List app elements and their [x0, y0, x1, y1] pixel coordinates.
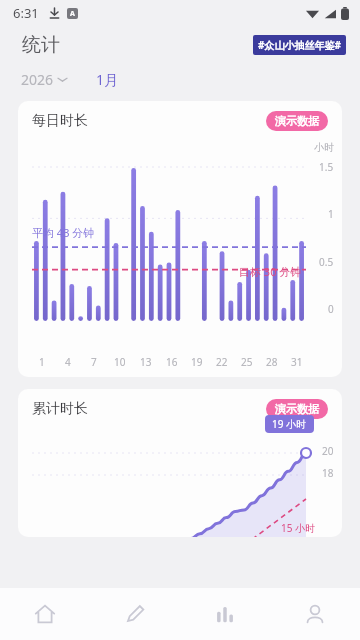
button[interactable]: 演示数据: [266, 399, 328, 419]
button[interactable]: 演示数据: [266, 111, 328, 131]
staticText: 每日时长: [32, 112, 88, 130]
staticText: 4: [65, 355, 71, 369]
button[interactable]: 2026: [18, 67, 70, 92]
staticText: 目标 30 分钟: [239, 264, 302, 279]
staticText: 19 小时: [272, 417, 307, 431]
staticText: 小时: [314, 141, 334, 154]
button[interactable]: Profile: [270, 588, 360, 640]
staticText: 15 小时: [281, 521, 316, 535]
staticText: 6:31: [13, 4, 39, 22]
staticText: 1: [328, 207, 334, 221]
staticText: 10: [114, 355, 126, 369]
staticText: 1.5: [319, 160, 334, 174]
button[interactable]: Edit: [90, 588, 180, 640]
staticText: 0: [328, 302, 334, 316]
staticText: A: [70, 9, 75, 19]
staticText: 13: [140, 355, 152, 369]
staticText: 20: [322, 444, 334, 458]
staticText: 0.5: [319, 255, 334, 269]
staticText: 25: [241, 355, 253, 369]
staticText: 演示数据: [275, 402, 319, 416]
staticText: 18: [322, 466, 334, 480]
button[interactable]: Home: [0, 588, 90, 640]
staticText: 19: [191, 355, 203, 369]
staticText: 28: [266, 355, 278, 369]
staticText: 16: [166, 355, 178, 369]
staticText: 1月: [96, 70, 119, 89]
staticText: 统计: [22, 33, 60, 57]
staticText: 7: [91, 355, 97, 369]
staticText: 平均 43 分钟: [32, 225, 95, 240]
staticText: 1: [39, 355, 45, 369]
staticText: 31: [291, 355, 303, 369]
staticText: #众山小抽丝年鉴#: [258, 38, 341, 52]
staticText: 2026: [21, 70, 54, 89]
button[interactable]: Statistics: [180, 588, 270, 640]
staticText: 22: [216, 355, 228, 369]
staticText: 演示数据: [275, 114, 319, 128]
button[interactable]: #众山小抽丝年鉴#: [253, 35, 346, 55]
staticText: 累计时长: [32, 400, 88, 418]
button[interactable]: 1月: [92, 67, 123, 92]
